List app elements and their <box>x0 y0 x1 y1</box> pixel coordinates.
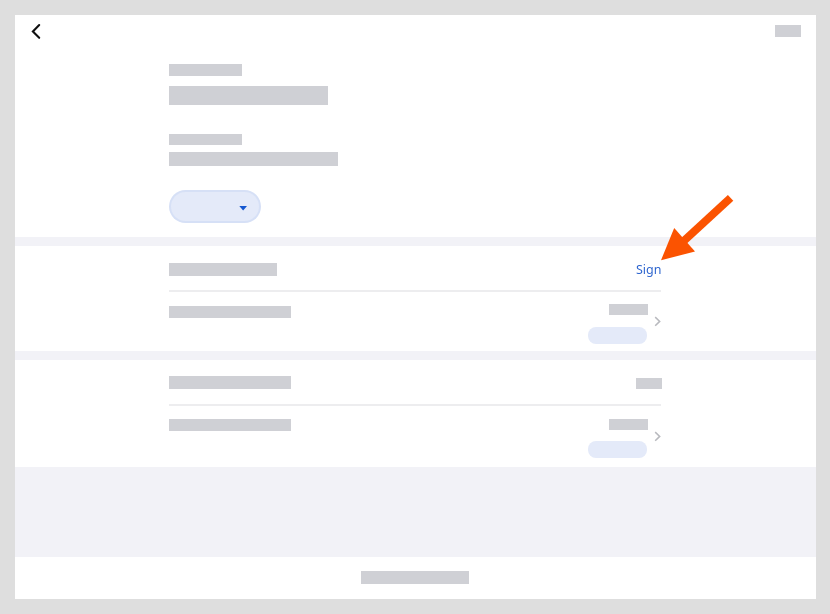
staticText: Sign <box>636 261 662 278</box>
button[interactable]: Primary action <box>345 563 485 593</box>
button[interactable]: More options <box>769 19 807 43</box>
button[interactable]: Back <box>20 17 50 47</box>
button[interactable]: Open item <box>652 429 666 443</box>
button[interactable]: Open dropdown <box>171 192 259 221</box>
button[interactable]: Sign <box>628 256 670 282</box>
button[interactable]: Open item <box>652 314 666 328</box>
button[interactable]: Open item <box>169 410 666 464</box>
button[interactable]: Open item <box>169 296 666 350</box>
